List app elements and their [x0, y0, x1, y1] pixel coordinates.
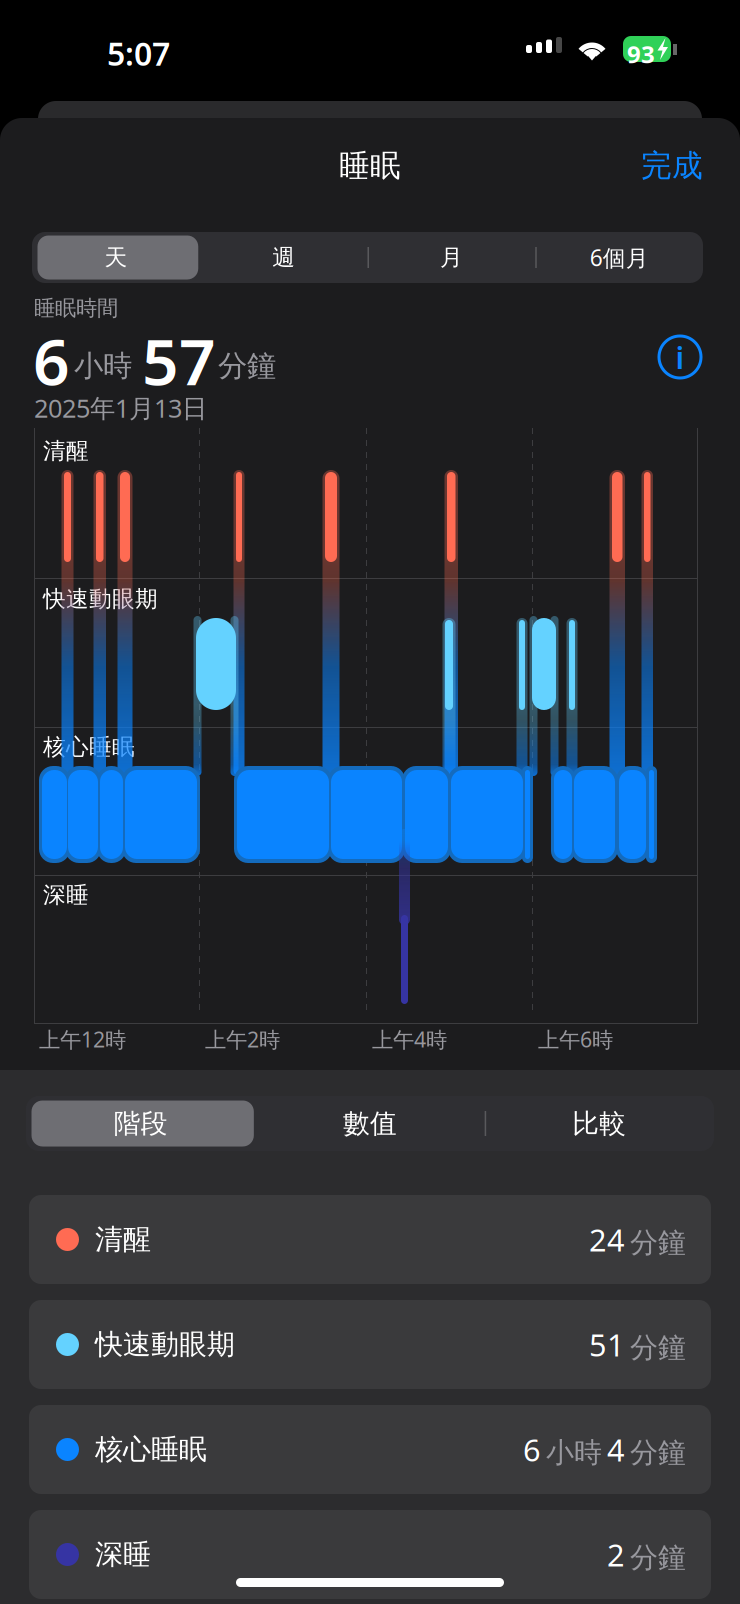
staticText: 上午12時 [39, 1025, 126, 1053]
staticText: 分鐘 [630, 1225, 686, 1260]
staticText: 清醒 [95, 1222, 151, 1257]
staticText: 57 [142, 318, 216, 403]
staticText: 月 [440, 244, 463, 271]
staticText: 上午6時 [538, 1025, 613, 1053]
button[interactable]: 數值 [255, 1096, 485, 1151]
staticText: 快速動眼期 [43, 585, 158, 613]
staticText: 比較 [572, 1107, 626, 1140]
button[interactable]: 快速動眼期 [29, 1300, 711, 1389]
staticText: 深睡 [43, 881, 89, 909]
staticText: 天 [104, 244, 127, 271]
button[interactable]: 6個月 [535, 232, 703, 283]
staticText: 5:07 [107, 32, 170, 74]
button[interactable]: 深睡 [29, 1510, 711, 1599]
staticText: 6 [33, 318, 70, 403]
button[interactable]: 核心睡眠 [29, 1405, 711, 1494]
staticText: 93 [627, 38, 655, 70]
button[interactable]: 階段 [26, 1096, 255, 1151]
staticText: 6 [523, 1429, 541, 1470]
staticText: 睡眠時間 [34, 295, 118, 321]
staticText: 階段 [114, 1107, 168, 1140]
button[interactable]: 天 [32, 232, 200, 283]
staticText: 上午4時 [372, 1025, 447, 1053]
staticText: 分鐘 [630, 1330, 686, 1365]
staticText: 4 [607, 1429, 625, 1470]
button[interactable]: 清醒 [29, 1195, 711, 1284]
staticText: 快速動眼期 [95, 1327, 235, 1362]
staticText: 清醒 [43, 437, 89, 465]
staticText: 數值 [343, 1107, 397, 1140]
staticText: 分鐘 [630, 1540, 686, 1575]
staticText: 2025年1月13日 [34, 391, 207, 425]
staticText: 睡眠 [339, 147, 401, 185]
staticText: 週 [272, 244, 295, 271]
button[interactable]: 完成 [629, 139, 715, 193]
staticText: 小時 [546, 1435, 602, 1470]
button[interactable]: 月 [367, 232, 535, 283]
button[interactable]: 關於睡眠時間 [652, 329, 708, 385]
staticText: 分鐘 [630, 1435, 686, 1470]
staticText: 上午2時 [205, 1025, 280, 1053]
staticText: 核心睡眠 [43, 733, 135, 761]
staticText: 2 [607, 1534, 625, 1575]
button[interactable]: 比較 [485, 1096, 714, 1151]
button[interactable]: 週 [200, 232, 368, 283]
staticText: 51 [589, 1324, 625, 1365]
staticText: 完成 [641, 147, 703, 185]
staticText: 分鐘 [218, 348, 276, 384]
staticText: 核心睡眠 [95, 1432, 207, 1467]
staticText: 6個月 [590, 242, 649, 272]
staticText: 深睡 [95, 1537, 151, 1572]
staticText: i [675, 337, 684, 377]
staticText: 24 [589, 1219, 625, 1260]
staticText: 小時 [74, 348, 132, 384]
